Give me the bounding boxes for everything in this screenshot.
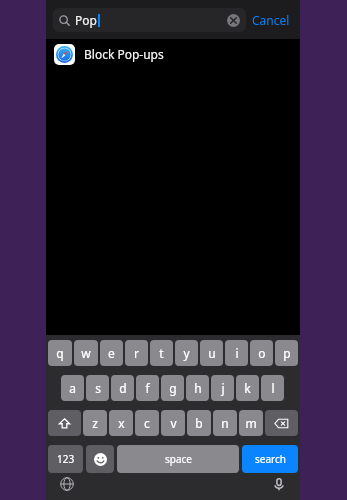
button[interactable]: q bbox=[48, 340, 72, 366]
button[interactable]: u bbox=[200, 340, 223, 366]
staticText: r bbox=[134, 345, 139, 361]
staticText: a bbox=[69, 380, 76, 396]
staticText: Block Pop-ups bbox=[84, 46, 164, 62]
staticText: 123 bbox=[57, 452, 75, 466]
staticText: m bbox=[245, 415, 257, 431]
button[interactable]: n bbox=[213, 410, 237, 436]
button[interactable]: Voice input bbox=[272, 477, 286, 491]
staticText: e bbox=[108, 345, 115, 361]
button[interactable]: Pop bbox=[53, 8, 246, 32]
staticText: f bbox=[145, 380, 150, 396]
staticText: x bbox=[118, 415, 125, 431]
staticText: t bbox=[159, 345, 164, 361]
button[interactable]: h bbox=[186, 375, 209, 401]
button[interactable]: t bbox=[150, 340, 173, 366]
button[interactable]: o bbox=[250, 340, 273, 366]
button[interactable]: d bbox=[111, 375, 134, 401]
staticText: w bbox=[81, 345, 91, 361]
button[interactable]: l bbox=[261, 375, 284, 401]
staticText: g bbox=[169, 380, 177, 396]
button[interactable]: g bbox=[161, 375, 184, 401]
button[interactable]: f bbox=[136, 375, 159, 401]
staticText: search bbox=[255, 452, 286, 466]
staticText: Pop bbox=[75, 12, 97, 28]
button[interactable]: search bbox=[242, 445, 298, 473]
staticText: h bbox=[194, 380, 202, 396]
button[interactable]: r bbox=[125, 340, 148, 366]
staticText: n bbox=[221, 415, 229, 431]
staticText: c bbox=[144, 415, 150, 431]
button[interactable]: Cancel bbox=[246, 8, 296, 32]
button[interactable]: p bbox=[275, 340, 298, 366]
button[interactable]: y bbox=[175, 340, 198, 366]
button[interactable]: z bbox=[83, 410, 107, 436]
button[interactable]: v bbox=[161, 410, 185, 436]
staticText: u bbox=[208, 345, 216, 361]
button[interactable]: k bbox=[236, 375, 259, 401]
button[interactable]: i bbox=[225, 340, 248, 366]
button[interactable]: Clear text bbox=[227, 14, 240, 27]
staticText: q bbox=[56, 345, 64, 361]
button[interactable]: e bbox=[100, 340, 123, 366]
staticText: space bbox=[165, 452, 192, 466]
button[interactable]: c bbox=[135, 410, 159, 436]
staticText: s bbox=[95, 380, 101, 396]
staticText: d bbox=[119, 380, 127, 396]
staticText: p bbox=[283, 345, 291, 361]
button[interactable]: Change language bbox=[60, 477, 74, 491]
button[interactable]: space bbox=[117, 445, 239, 473]
button[interactable]: b bbox=[187, 410, 211, 436]
button[interactable]: Emoji bbox=[86, 445, 114, 473]
button[interactable]: w bbox=[74, 340, 98, 366]
button[interactable]: 123 bbox=[48, 445, 83, 473]
button[interactable]: Shift bbox=[48, 410, 81, 436]
staticText: l bbox=[271, 380, 275, 396]
button[interactable]: a bbox=[61, 375, 84, 401]
staticText: z bbox=[92, 415, 98, 431]
button[interactable]: Block Pop-ups bbox=[46, 39, 300, 69]
staticText: i bbox=[235, 345, 239, 361]
staticText: k bbox=[244, 380, 251, 396]
staticText: y bbox=[183, 345, 190, 361]
staticText: o bbox=[258, 345, 266, 361]
button[interactable]: j bbox=[211, 375, 234, 401]
staticText: v bbox=[170, 415, 177, 431]
staticText: j bbox=[221, 380, 225, 396]
staticText: Cancel bbox=[252, 12, 290, 28]
button[interactable]: x bbox=[109, 410, 133, 436]
button[interactable]: m bbox=[239, 410, 263, 436]
button[interactable]: s bbox=[86, 375, 109, 401]
button[interactable]: Backspace bbox=[265, 410, 298, 436]
staticText: b bbox=[195, 415, 203, 431]
